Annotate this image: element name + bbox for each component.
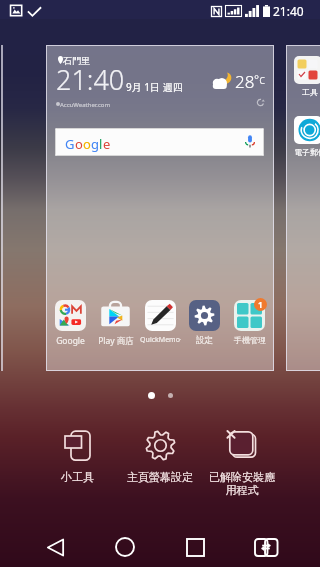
button[interactable]: 主頁螢幕設定 (120, 430, 200, 484)
staticText: e (103, 135, 111, 153)
staticText: g (91, 135, 99, 153)
button[interactable]: 設定 (184, 300, 225, 346)
staticText: 主頁螢幕設定 (127, 470, 193, 484)
staticText: 工具 (302, 87, 318, 97)
staticText: 石門里 (63, 55, 90, 66)
staticText: 21:40 (273, 3, 304, 19)
staticText: G (65, 135, 75, 153)
staticText: l (99, 135, 103, 153)
staticText: 21:40 (56, 61, 125, 98)
button[interactable]: Split screen (246, 527, 286, 567)
staticText: 手機管理 (234, 335, 266, 345)
staticText: 9月 1日 週四 (126, 80, 183, 94)
button[interactable]: G (55, 128, 264, 156)
button[interactable]: 已解除安裝應 用程式 (202, 430, 282, 498)
button[interactable]: Play 商店 (95, 300, 136, 347)
staticText: 28 (235, 70, 255, 93)
staticText: Google (56, 335, 85, 347)
button[interactable]: Back (35, 527, 75, 567)
button[interactable]: 小工具 (37, 430, 117, 484)
staticText: QuickMemo+ (140, 335, 181, 345)
staticText: 已解除安裝應 用程式 (209, 470, 275, 498)
staticText: 設定 (196, 335, 213, 346)
button[interactable]: QuickMemo+ (140, 300, 181, 345)
button[interactable]: Home (105, 527, 145, 567)
button[interactable]: 1 (229, 300, 270, 345)
staticText: 1 (258, 299, 263, 310)
staticText: o (83, 135, 91, 153)
staticText: Play 商店 (98, 335, 134, 347)
other: Voice search (246, 135, 254, 148)
staticText: AccuWeather.com (60, 101, 111, 109)
staticText: 電子郵件 (294, 147, 320, 157)
staticText: o (75, 135, 83, 153)
button[interactable]: Google (50, 300, 91, 347)
button[interactable]: Recent apps (175, 527, 215, 567)
staticText: 小工具 (61, 470, 94, 484)
staticText: °c (254, 71, 265, 87)
